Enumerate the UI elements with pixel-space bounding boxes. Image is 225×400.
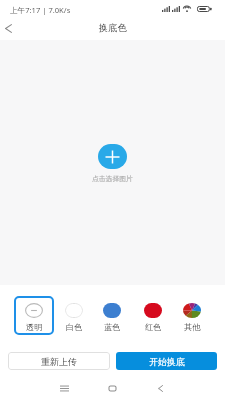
button[interactable]: 重新上传 (8, 352, 110, 370)
staticText: 白色 (66, 322, 83, 332)
button[interactable]: 蓝色 (92, 296, 132, 335)
button[interactable]: Back (146, 376, 174, 400)
button[interactable]: Home (98, 376, 126, 400)
staticText: 开始换底 (149, 356, 185, 367)
button[interactable]: 白色 (54, 296, 94, 335)
staticText: 红色 (145, 322, 162, 332)
button[interactable]: 开始换底 (116, 352, 217, 370)
staticText: 换底色 (99, 22, 127, 34)
button[interactable]: 透明 (14, 296, 54, 335)
staticText: 重新上传 (41, 356, 77, 367)
button[interactable]: 点击选择图片 (74, 136, 151, 191)
staticText: 点击选择图片 (92, 174, 133, 183)
staticText: 透明 (26, 322, 43, 332)
button[interactable]: 红色 (133, 296, 173, 335)
button[interactable]: Back (0, 16, 16, 40)
button[interactable]: 其他 (172, 296, 212, 335)
staticText: 上午7:17 | 7.0K/s (10, 5, 71, 15)
staticText: 其他 (184, 322, 201, 332)
button[interactable]: Recents (50, 376, 78, 400)
staticText: 蓝色 (104, 322, 121, 332)
